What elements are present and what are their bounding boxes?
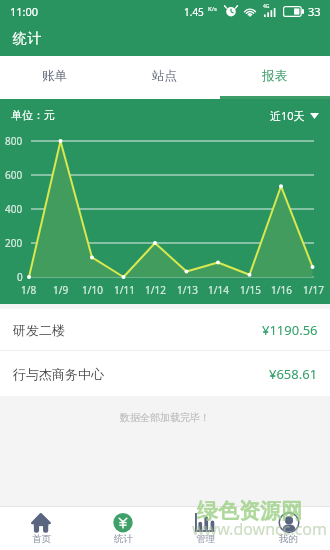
staticText: 统计 (114, 533, 133, 545)
staticText: ¥658.61 (269, 365, 318, 383)
staticText: 1/17 (303, 283, 324, 297)
staticText: 400 (5, 202, 23, 216)
button[interactable]: 报表 (220, 54, 330, 97)
staticText: 近10天 (270, 108, 305, 123)
button[interactable]: 统计 (82, 507, 164, 550)
staticText: www.downcc.com (192, 518, 328, 540)
staticText: K/s (208, 5, 217, 13)
staticText: 1/13 (177, 283, 198, 297)
button[interactable]: 首页 (0, 507, 82, 550)
staticText: 33 (308, 4, 321, 19)
staticText: 1/15 (240, 283, 261, 297)
staticText: 报表 (262, 68, 288, 84)
button[interactable]: 近10天 (270, 108, 319, 123)
staticText: 账单 (42, 68, 68, 84)
staticText: 0 (17, 270, 23, 284)
staticText: 800 (5, 134, 23, 148)
button[interactable]: 站点 (110, 54, 220, 97)
staticText: 绿色资源网 (197, 498, 302, 524)
button[interactable]: 账单 (0, 54, 110, 97)
staticText: 数据全部加载完毕！ (120, 411, 210, 424)
staticText: 站点 (152, 68, 178, 84)
staticText: 1/12 (145, 283, 166, 297)
staticText: 我的 (279, 533, 298, 545)
staticText: 1/11 (114, 283, 135, 297)
button[interactable]: 研发二楼 (0, 309, 330, 350)
staticText: 1/10 (82, 283, 103, 297)
staticText: ¥1190.56 (262, 321, 318, 339)
staticText: 统计 (12, 30, 42, 48)
staticText: 研发二楼 (13, 322, 65, 338)
staticText: 行与杰商务中心 (13, 366, 104, 382)
button[interactable]: 行与杰商务中心 (0, 351, 330, 396)
staticText: 1/16 (271, 283, 292, 297)
staticText: 管理 (196, 533, 215, 545)
staticText: 200 (5, 236, 23, 250)
staticText: 单位：元 (11, 108, 55, 122)
button[interactable]: 我的 (247, 507, 330, 550)
button[interactable]: 管理 (164, 507, 247, 550)
staticText: 600 (5, 168, 23, 182)
staticText: 1/8 (21, 283, 37, 297)
staticText: 1/9 (53, 283, 69, 297)
staticText: 1.45 (184, 5, 204, 19)
staticText: 1/14 (208, 283, 229, 297)
staticText: 首页 (32, 533, 51, 545)
staticText: 4G (263, 3, 270, 10)
staticText: 11:00 (10, 4, 39, 19)
